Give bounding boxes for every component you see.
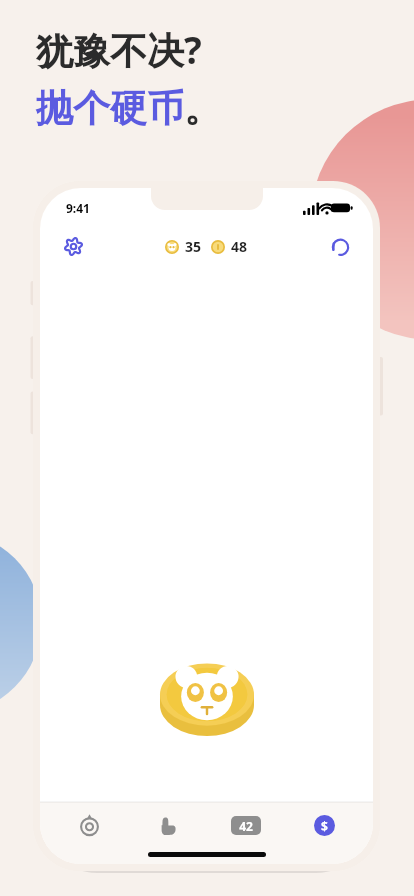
button[interactable]: Count 42: [216, 809, 276, 841]
button[interactable]: Tap mode: [137, 809, 197, 841]
staticText: 42: [239, 818, 253, 834]
staticText: 。: [184, 85, 221, 132]
staticText: 抛个硬币: [36, 85, 184, 132]
button[interactable]: Flip coin: [155, 660, 259, 738]
staticText: 9:41: [66, 200, 90, 216]
staticText: $: [321, 818, 328, 834]
staticText: 犹豫不决?: [36, 24, 202, 75]
staticText: 35: [185, 237, 202, 256]
button[interactable]: Store: [294, 809, 354, 841]
button[interactable]: Settings: [56, 229, 90, 263]
button[interactable]: Coin mode: [59, 809, 119, 841]
button[interactable]: Reset: [323, 229, 357, 263]
staticText: 48: [231, 237, 248, 256]
